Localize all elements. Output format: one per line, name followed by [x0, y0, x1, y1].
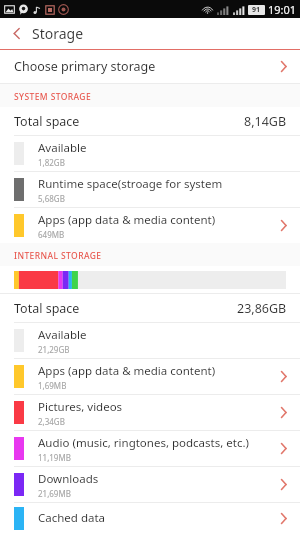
staticText: Downloads — [38, 471, 99, 487]
staticText: 1,82GB — [38, 157, 65, 168]
button[interactable]: Total space — [0, 107, 300, 135]
staticText: Apps (app data & media content) — [38, 212, 216, 228]
staticText: 5,68GB — [38, 193, 65, 204]
staticText: 21,29GB — [38, 344, 70, 355]
button[interactable]: Back — [0, 18, 300, 49]
staticText: Total space — [14, 113, 80, 130]
staticText: Runtime space(stroage for system runtime… — [38, 176, 272, 192]
staticText: Storage — [32, 24, 84, 43]
button[interactable]: Runtime space(stroage for system runtime… — [0, 172, 300, 207]
button[interactable]: Apps (app data & media content) — [0, 208, 300, 243]
staticText: 19:01 — [268, 2, 297, 17]
button[interactable]: Pictures, videos — [0, 395, 300, 430]
button[interactable]: Downloads — [0, 467, 300, 502]
button[interactable]: Apps (app data & media content) — [0, 359, 300, 394]
staticText: 2,34GB — [38, 416, 65, 427]
button[interactable]: Available — [0, 136, 300, 171]
staticText: Available — [38, 327, 87, 343]
staticText: Cached data — [38, 510, 106, 526]
button[interactable]: Audio (music, ringtones, podcasts, etc.) — [0, 431, 300, 466]
staticText: INTERNAL STORAGE — [14, 250, 102, 262]
staticText: Audio (music, ringtones, podcasts, etc.) — [38, 435, 249, 451]
other: Back — [12, 27, 22, 40]
staticText: 11,19MB — [38, 452, 71, 463]
staticText: 91 — [252, 5, 261, 15]
staticText: Apps (app data & media content) — [38, 363, 216, 379]
button[interactable]: Available — [0, 323, 300, 358]
staticText: 21,69MB — [38, 488, 71, 499]
staticText: Pictures, videos — [38, 399, 123, 415]
button[interactable]: Total space — [0, 294, 300, 322]
staticText: Total space — [14, 300, 80, 317]
staticText: 8,14GB — [244, 113, 287, 130]
staticText: Available — [38, 140, 87, 156]
button[interactable]: Cached data — [0, 503, 300, 533]
staticText: 23,86GB — [237, 300, 287, 317]
staticText: Choose primary storage — [14, 58, 156, 75]
staticText: SYSTEM STORAGE — [14, 91, 92, 103]
staticText: 1,69MB — [38, 380, 67, 391]
button[interactable]: Choose primary storage — [0, 50, 300, 83]
staticText: 649MB — [38, 229, 65, 240]
